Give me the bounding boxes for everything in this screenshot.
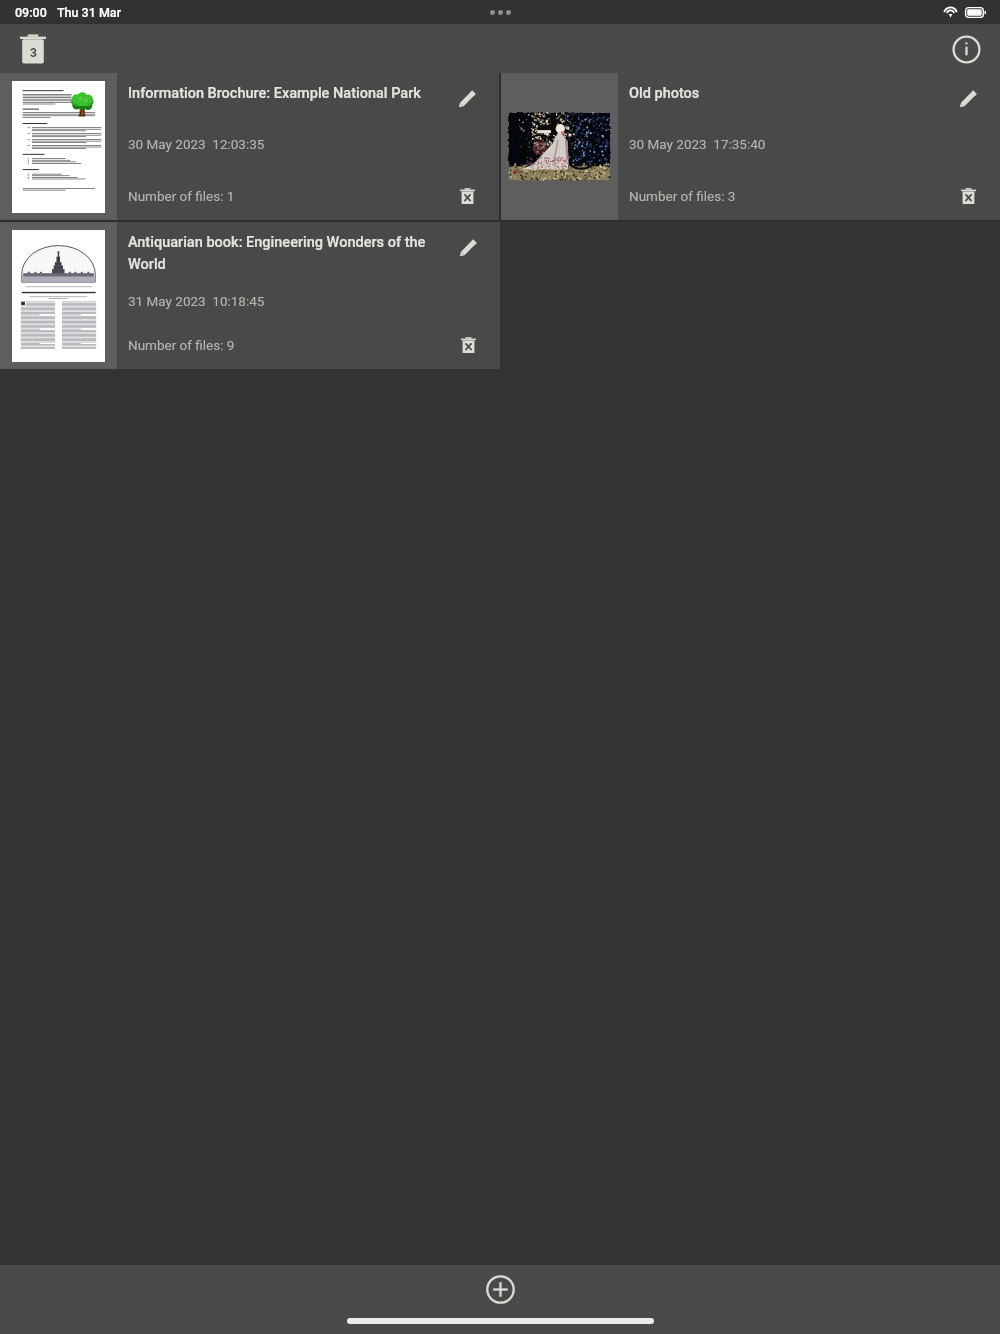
staticText: Thu 31 Mar xyxy=(57,5,122,20)
staticText: Old photos xyxy=(629,85,949,102)
staticText: Antiquarian book: Engineering Wonders of… xyxy=(128,234,449,273)
staticText: 31 May 2023 10:18:45 xyxy=(128,293,265,309)
button[interactable]: Delete xyxy=(955,183,981,209)
staticText: Information Brochure: Example National P… xyxy=(128,85,448,102)
staticText: 09:00 xyxy=(15,5,47,20)
button[interactable]: Edit xyxy=(955,85,981,111)
button[interactable]: Info xyxy=(942,25,990,73)
button[interactable]: Delete xyxy=(454,183,480,209)
button[interactable]: Add xyxy=(478,1267,522,1311)
staticText: 3 xyxy=(30,46,37,60)
button[interactable]: Antiquarian book: Engineering Wonders of… xyxy=(0,222,500,369)
staticText: 30 May 2023 12:03:35 xyxy=(128,136,265,152)
button[interactable]: Edit xyxy=(454,85,480,111)
button[interactable]: Old photos xyxy=(501,73,1000,220)
button[interactable]: Edit xyxy=(455,234,481,260)
staticText: Number of files: 1 xyxy=(128,188,235,204)
staticText: 30 May 2023 17:35:40 xyxy=(629,136,766,152)
staticText: Number of files: 3 xyxy=(629,188,736,204)
button[interactable]: Information Brochure: Example National P… xyxy=(0,73,499,220)
button[interactable]: Delete xyxy=(455,332,481,358)
button[interactable]: Trash, 3 items xyxy=(9,25,57,73)
staticText: Number of files: 9 xyxy=(128,337,235,353)
